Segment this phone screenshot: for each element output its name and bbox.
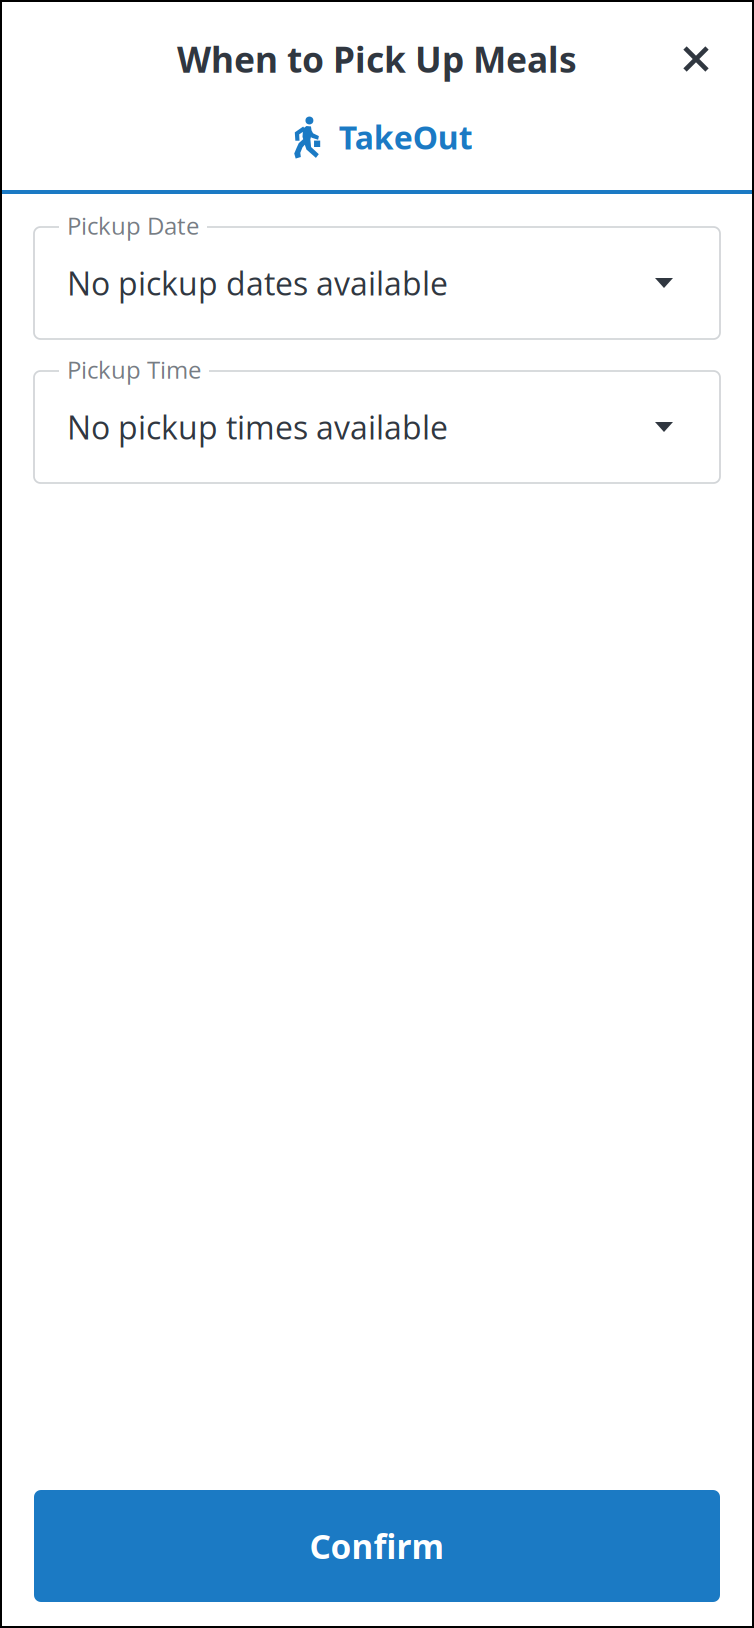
button[interactable]: Confirm bbox=[34, 1490, 720, 1602]
staticText: Pickup Time bbox=[67, 353, 201, 386]
staticText: Confirm bbox=[309, 1523, 444, 1569]
staticText: When to Pick Up Meals bbox=[177, 35, 577, 83]
button[interactable]: No pickup dates available bbox=[34, 216, 720, 339]
staticText: No pickup times available bbox=[67, 405, 448, 449]
staticText: No pickup dates available bbox=[67, 261, 448, 305]
staticText: TakeOut bbox=[339, 115, 473, 159]
button[interactable]: Close bbox=[661, 24, 731, 94]
staticText: Pickup Date bbox=[67, 209, 199, 242]
button[interactable]: No pickup times available bbox=[34, 360, 720, 483]
